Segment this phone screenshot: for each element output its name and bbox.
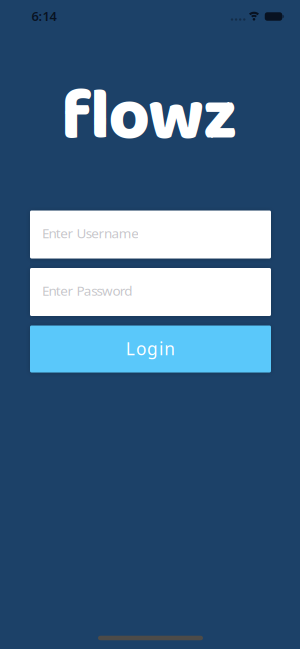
staticText: flowz bbox=[61, 61, 237, 175]
staticText: Enter Username bbox=[42, 224, 139, 242]
staticText: 6:14 bbox=[31, 7, 56, 25]
button[interactable]: Enter Password bbox=[30, 268, 271, 316]
button[interactable]: Login bbox=[30, 325, 271, 372]
staticText: Login bbox=[126, 337, 175, 360]
button[interactable]: Enter Username bbox=[30, 210, 271, 258]
staticText: Enter Password bbox=[42, 281, 132, 300]
